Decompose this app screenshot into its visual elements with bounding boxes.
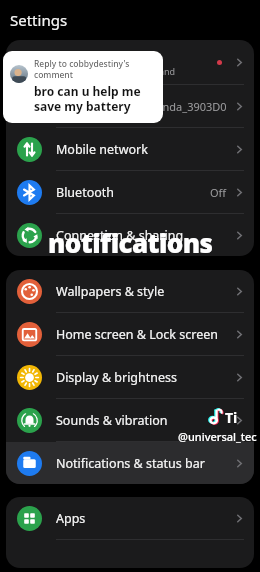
staticText: Wallpapers & style [56,283,234,300]
button[interactable]: Sign in [6,40,254,84]
staticText: Ti [225,408,238,427]
staticText: Off [210,185,227,200]
staticText: Display & brightness [56,369,234,386]
other: TikTok [206,409,223,426]
button[interactable]: Bluetooth [6,171,254,213]
button[interactable]: Reply to cobbydestiny's comment [3,51,163,123]
staticText: Tenda_3903D0 [151,99,227,114]
button[interactable]: Sounds & vibration [6,399,254,441]
button[interactable]: Wi-Fi [6,85,254,127]
staticText: notifications [48,225,213,260]
button[interactable]: Notifications & status bar [6,442,254,484]
staticText: Wi-Fi [56,98,151,115]
button[interactable]: Apps [6,497,254,539]
staticText: Connection & sharing [56,227,234,244]
button[interactable]: Connection & sharing [6,214,254,256]
staticText: Home screen & Lock screen [56,326,234,343]
staticText: Notifications & status bar [56,455,234,472]
staticText: Apps [56,510,234,527]
staticText: Sign in [56,48,96,65]
button[interactable]: Mobile network [6,128,254,170]
button[interactable]: Wallpapers & style [6,270,254,312]
staticText: Sounds & vibration [56,412,234,429]
staticText: @universal_tec [178,429,257,444]
staticText: Reply to cobbydestiny's comment [34,58,155,80]
button[interactable]: Home screen & Lock screen [6,313,254,355]
staticText: Sync, Find device, Cloud and [56,65,176,77]
staticText: bro can u help me save my battery [34,83,155,114]
staticText: Mobile network [56,141,234,158]
button[interactable]: Display & brightness [6,356,254,398]
staticText: Settings [10,10,68,30]
staticText: Bluetooth [56,184,210,201]
